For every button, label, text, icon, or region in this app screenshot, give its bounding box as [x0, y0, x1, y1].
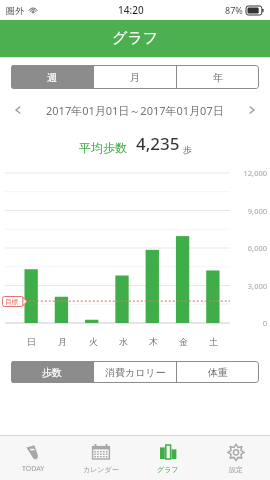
staticText: 年: [213, 71, 223, 84]
staticText: 2017年01月01日～2017年01月07日: [46, 103, 224, 118]
staticText: 12,000: [230, 168, 267, 178]
button[interactable]: グラフ: [134, 436, 202, 480]
button[interactable]: 歩数: [11, 361, 93, 383]
staticText: 週: [47, 71, 57, 84]
staticText: カレンダー: [83, 465, 119, 474]
staticText: 設定: [229, 465, 243, 474]
staticText: 0: [230, 318, 267, 328]
button[interactable]: Next week: [242, 100, 262, 120]
button[interactable]: 体重: [177, 361, 259, 383]
staticText: 金: [179, 336, 188, 347]
staticText: 87%: [225, 4, 243, 16]
button[interactable]: カレンダー: [67, 436, 134, 480]
staticText: 土: [209, 336, 218, 347]
button[interactable]: 消費カロリー: [94, 361, 176, 383]
staticText: 木: [149, 336, 158, 347]
staticText: 目標: [5, 298, 18, 306]
staticText: 6,000: [230, 243, 267, 253]
staticText: 圏外: [6, 5, 24, 16]
staticText: 日: [27, 336, 36, 347]
button[interactable]: 月: [94, 65, 176, 89]
button[interactable]: 設定: [202, 436, 270, 480]
staticText: 14:20: [118, 3, 144, 17]
staticText: 月: [130, 71, 140, 84]
staticText: 9,000: [230, 206, 267, 216]
staticText: 3,000: [230, 281, 267, 291]
staticText: 4,235: [136, 132, 180, 155]
staticText: 火: [89, 336, 98, 347]
staticText: 水: [119, 336, 128, 347]
button[interactable]: TODAY: [0, 436, 67, 480]
staticText: 月: [58, 336, 67, 347]
staticText: グラフ: [157, 465, 179, 474]
button[interactable]: 年: [177, 65, 259, 89]
staticText: 平均歩数: [79, 140, 127, 155]
staticText: TODAY: [22, 464, 45, 474]
staticText: 歩: [183, 144, 192, 155]
staticText: グラフ: [112, 29, 159, 48]
button[interactable]: 週: [11, 65, 93, 89]
staticText: 消費カロリー: [105, 366, 166, 379]
staticText: 歩数: [42, 366, 62, 379]
button[interactable]: Previous week: [8, 100, 28, 120]
staticText: 体重: [208, 366, 228, 379]
